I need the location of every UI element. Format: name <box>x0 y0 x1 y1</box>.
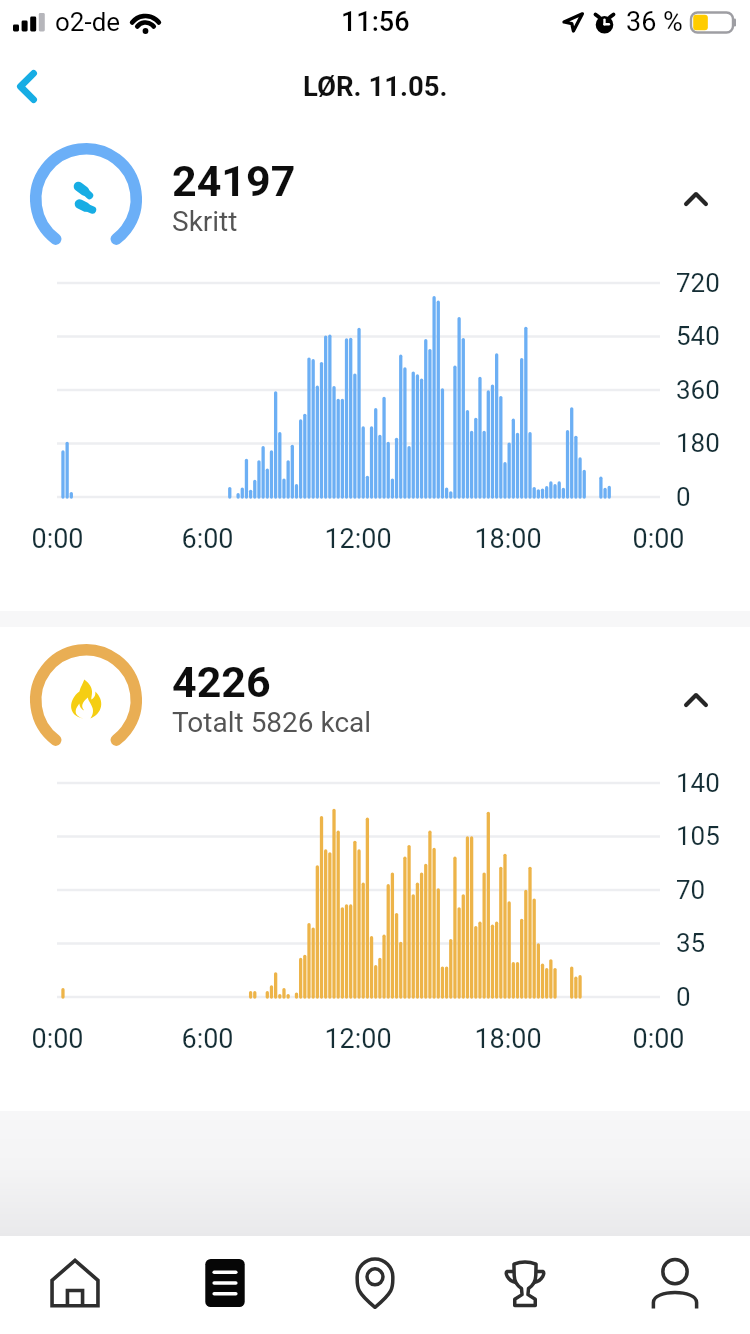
staticText: 35 <box>676 928 706 958</box>
staticText: 11:56 <box>341 6 410 38</box>
button[interactable]: Challenges <box>450 1236 600 1334</box>
staticText: 540 <box>676 321 720 351</box>
button[interactable]: Back <box>0 50 63 122</box>
button[interactable]: Places <box>300 1236 450 1334</box>
staticText: 0:00 <box>632 523 685 555</box>
button[interactable]: Profile <box>600 1236 750 1334</box>
staticText: 0:00 <box>31 523 84 555</box>
staticText: 0 <box>676 982 691 1012</box>
staticText: Skritt <box>172 205 238 238</box>
staticText: LØR. 11.05. <box>303 70 448 102</box>
button[interactable]: Collapse <box>658 161 734 237</box>
staticText: 18:00 <box>474 523 542 555</box>
staticText: 12:00 <box>324 523 392 555</box>
staticText: 24197 <box>172 156 296 206</box>
staticText: 105 <box>676 821 720 851</box>
staticText: 36 % <box>626 6 683 38</box>
staticText: 720 <box>676 268 720 298</box>
staticText: 0:00 <box>632 1023 685 1055</box>
staticText: 0:00 <box>31 1023 84 1055</box>
staticText: 4226 <box>172 657 271 707</box>
staticText: 180 <box>676 428 720 458</box>
staticText: 6:00 <box>181 1023 234 1055</box>
staticText: 360 <box>676 375 720 405</box>
staticText: 18:00 <box>474 1023 542 1055</box>
button[interactable]: Home <box>0 1236 150 1334</box>
button[interactable]: Diary <box>150 1236 300 1334</box>
staticText: 0 <box>676 482 691 512</box>
staticText: 70 <box>676 875 706 905</box>
staticText: Totalt 5826 kcal <box>172 706 372 739</box>
staticText: 140 <box>676 768 720 798</box>
staticText: 12:00 <box>324 1023 392 1055</box>
staticText: 6:00 <box>181 523 234 555</box>
button[interactable]: Collapse <box>658 662 734 738</box>
staticText: o2-de <box>55 7 121 37</box>
